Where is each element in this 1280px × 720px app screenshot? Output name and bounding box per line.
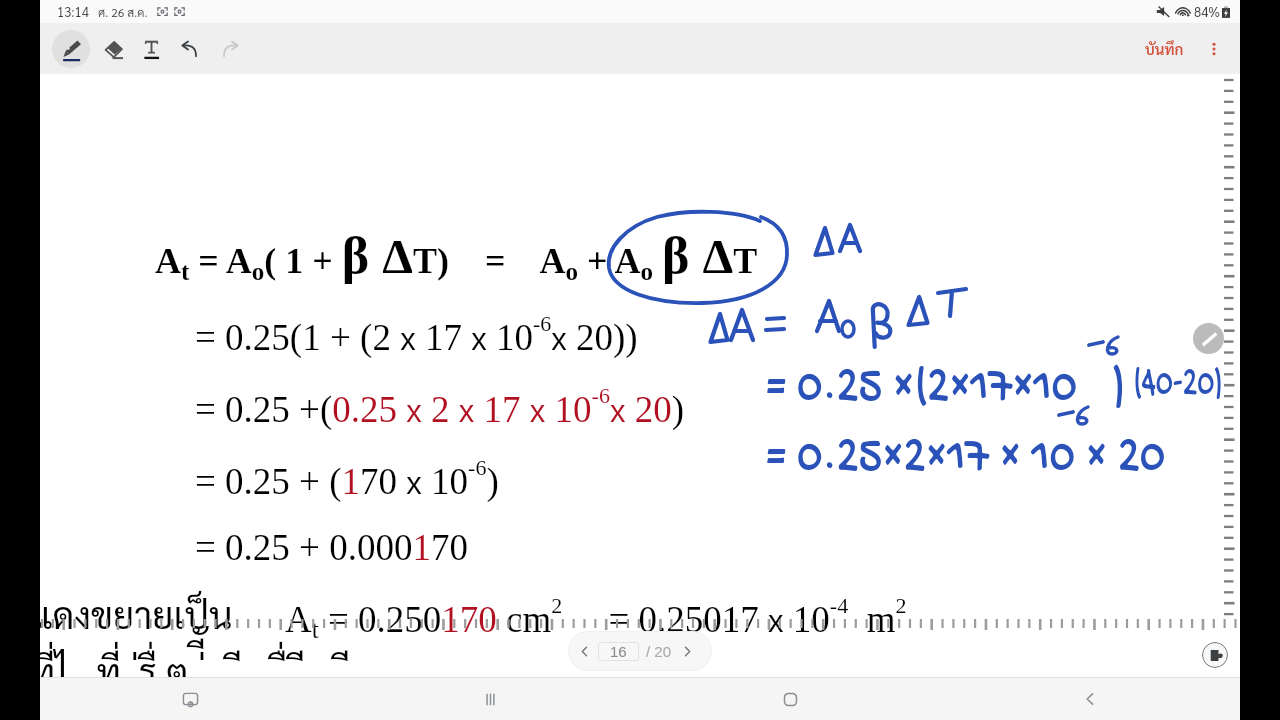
staticText: ) — [1113, 353, 1126, 426]
button[interactable]: Home — [772, 681, 808, 717]
staticText: At = 0.250170 cm2 = 0.25017 x 10-4 m2 — [285, 593, 907, 643]
button[interactable]: Bookmark page — [1202, 642, 1228, 668]
button[interactable]: More options — [1198, 33, 1230, 65]
button[interactable]: Redo — [210, 30, 248, 68]
button[interactable]: Text — [132, 30, 170, 68]
button[interactable]: 16 — [598, 642, 639, 661]
staticText: 84% — [1194, 3, 1221, 20]
staticText: ที่ไ ที่ ่รื่ ต ่ีั ี ื่ ี ี — [31, 646, 351, 694]
button[interactable]: Pen tool handle — [1193, 323, 1224, 354]
staticText: = 0.25 + 0.000170 — [195, 527, 468, 568]
staticText: (40-20) — [1133, 359, 1223, 412]
staticText: 16 — [610, 643, 627, 660]
staticText: บันทึก — [1145, 39, 1184, 58]
staticText: ศ. 26 ส.ค. — [98, 4, 148, 20]
staticText: 13:14 — [57, 3, 89, 20]
button[interactable]: Screenshot — [172, 681, 208, 717]
button[interactable]: Recent apps — [472, 681, 508, 717]
button[interactable]: Eraser — [93, 30, 131, 68]
staticText: = 0.25 + (170 x 10-6) — [195, 455, 499, 502]
button[interactable]: Undo — [171, 30, 209, 68]
staticText: = 0.25(1 + (2 x 17 x 10-6x 20)) — [195, 311, 638, 358]
button[interactable]: Pen — [52, 30, 90, 68]
button[interactable]: บันทึก — [1137, 33, 1192, 64]
button[interactable]: Next page — [676, 640, 698, 662]
staticText: / 20 — [646, 643, 672, 660]
staticText: = 0.25 ×(2×17×10 — [766, 356, 1077, 422]
staticText: At = Ao( 1 + β ΔT) = Ao + Ao β ΔT — [155, 227, 758, 285]
button[interactable]: Previous page — [573, 640, 595, 662]
staticText: แดงขยายเป็น — [31, 589, 233, 637]
staticText: = 0.25×2×17 × 10 × 20 — [766, 426, 1166, 492]
staticText: = 0.25 +(0.25 x 2 x 17 x 10-6x 20) — [195, 383, 684, 430]
button[interactable]: Back — [1072, 681, 1108, 717]
